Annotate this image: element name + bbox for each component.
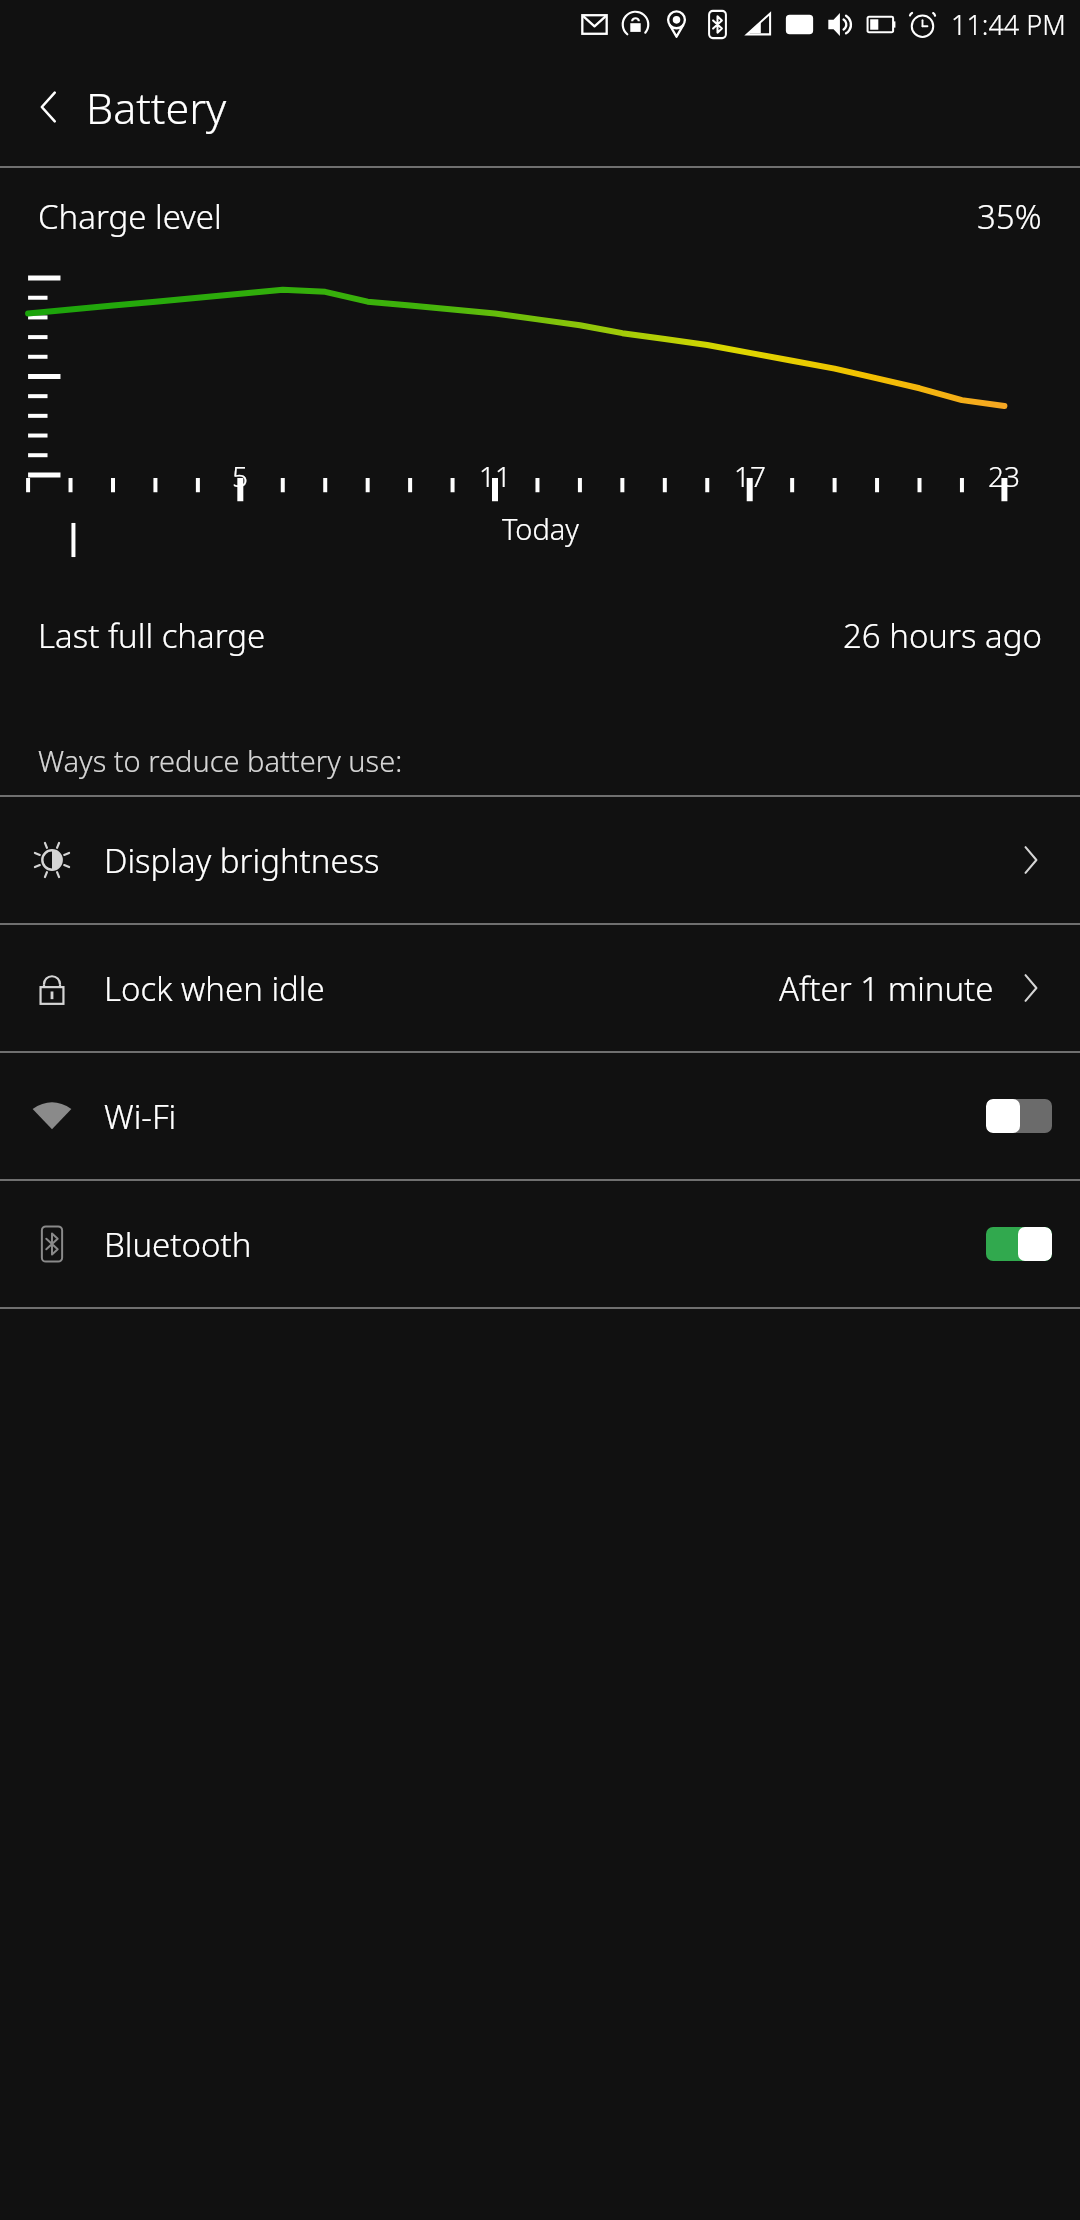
staticText: 23 — [982, 457, 1026, 495]
other: Open — [1008, 838, 1052, 882]
button[interactable]: Wi-Fi — [0, 1053, 1080, 1179]
staticText: Wi-Fi — [104, 1094, 177, 1139]
staticText: After 1 minute — [779, 966, 994, 1011]
staticText: 5 — [218, 457, 262, 495]
staticText: Charge level — [38, 194, 222, 239]
staticText: Today — [502, 509, 579, 548]
staticText: Display brightness — [104, 838, 380, 883]
staticText: Ways to reduce battery use: — [38, 741, 403, 780]
button[interactable]: Bluetooth — [0, 1181, 1080, 1307]
staticText: 26 hours ago — [843, 613, 1042, 658]
staticText: Lock when idle — [104, 966, 325, 1011]
button[interactable]: Back — [20, 78, 78, 136]
other: Open — [1008, 966, 1052, 1010]
staticText: 11:44 PM — [951, 6, 1066, 43]
staticText: 35% — [977, 194, 1042, 239]
staticText: 17 — [728, 457, 772, 495]
staticText: Battery — [86, 78, 227, 137]
button[interactable]: Bluetooth toggle — [986, 1227, 1052, 1261]
button[interactable]: Display brightness — [0, 797, 1080, 923]
button[interactable]: Lock when idle — [0, 925, 1080, 1051]
button[interactable]: Wi-Fi toggle — [986, 1099, 1052, 1133]
staticText: Bluetooth — [104, 1222, 252, 1267]
staticText: Last full charge — [38, 613, 266, 658]
staticText: 11 — [473, 457, 517, 495]
